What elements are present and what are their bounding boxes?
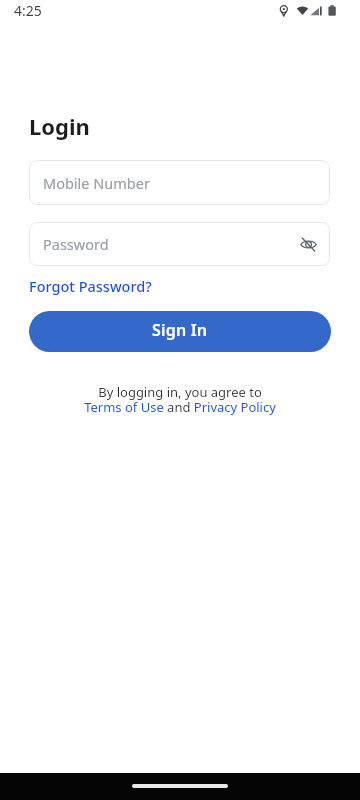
- button[interactable]: Forgot Password?: [29, 276, 152, 296]
- staticText: Login: [29, 111, 90, 141]
- staticText: Terms of Use and Privacy Policy: [84, 398, 276, 416]
- staticText: By logging in, you agree to: [98, 383, 262, 401]
- staticText: Mobile Number: [43, 173, 150, 193]
- staticText: Password: [43, 234, 109, 254]
- button[interactable]: [297, 233, 319, 255]
- staticText: 4:25: [14, 1, 42, 20]
- button[interactable]: Sign In: [29, 311, 331, 352]
- button[interactable]: Mobile Number: [29, 160, 330, 205]
- button[interactable]: Terms of Use and Privacy Policy: [0, 398, 360, 416]
- button[interactable]: Password: [29, 222, 330, 266]
- staticText: Sign In: [152, 319, 208, 341]
